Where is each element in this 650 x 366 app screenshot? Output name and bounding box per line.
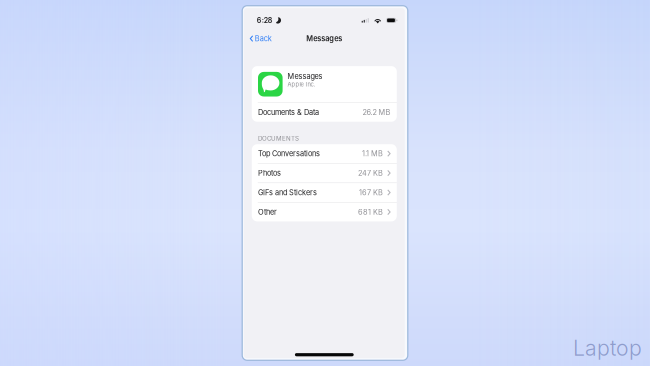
- staticText: Messages: [306, 34, 342, 43]
- staticText: Other: [258, 207, 277, 216]
- button[interactable]: Back: [244, 31, 280, 46]
- staticText: Laptop: [573, 335, 642, 361]
- button[interactable]: Documents & Data: [252, 103, 397, 122]
- staticText: Back: [255, 34, 272, 43]
- staticText: 681 KB: [358, 207, 383, 216]
- staticText: Apple Inc.: [287, 81, 315, 88]
- staticText: 247 KB: [358, 169, 383, 177]
- button[interactable]: Other: [252, 202, 397, 221]
- button[interactable]: Top Conversations: [252, 144, 397, 163]
- staticText: 167 KB: [359, 188, 383, 197]
- staticText: 26.2 MB: [363, 108, 391, 117]
- staticText: 1.1 MB: [362, 149, 383, 158]
- staticText: Messages: [287, 72, 322, 81]
- staticText: 6:28: [257, 16, 273, 25]
- staticText: Photos: [258, 169, 281, 177]
- button[interactable]: Photos: [252, 164, 397, 182]
- button[interactable]: GIFs and Stickers: [252, 183, 397, 202]
- staticText: GIFs and Stickers: [258, 188, 317, 197]
- staticText: DOCUMENTS: [258, 135, 299, 142]
- staticText: Top Conversations: [258, 149, 320, 158]
- staticText: Documents & Data: [258, 108, 319, 117]
